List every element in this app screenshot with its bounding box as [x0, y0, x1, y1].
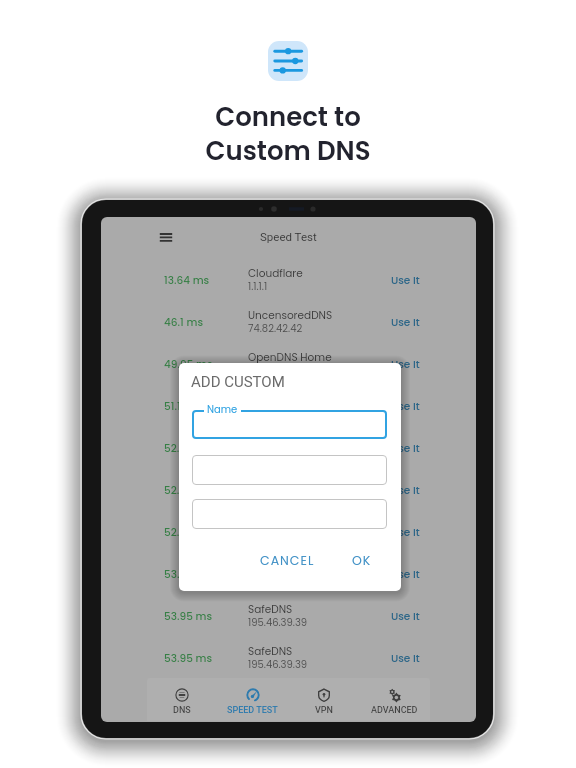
button[interactable]: CANCEL [259, 548, 315, 572]
button[interactable]: 51.16 ms [101, 385, 476, 427]
staticText: 9.9.9.9 [248, 447, 280, 461]
button[interactable]: 52.3 ms [101, 469, 476, 511]
button[interactable]: SPEED TEST [217, 678, 288, 721]
staticText: Use It [391, 315, 420, 330]
staticText: CANCEL [260, 552, 315, 569]
staticText: AdGuard [248, 476, 296, 491]
button[interactable]: 53.95 ms [101, 637, 476, 679]
staticText: 52.6 ms [164, 525, 206, 540]
staticText: Speed Test [260, 230, 317, 243]
button[interactable]: ADVANCED [359, 678, 430, 721]
button[interactable]: Menu [156, 228, 176, 248]
staticText: 53.2 ms [164, 567, 205, 582]
staticText: Name [207, 402, 238, 416]
staticText: 13.64 ms [164, 273, 210, 288]
staticText: ADVANCED [371, 705, 418, 716]
staticText: 8.8.8.8 [248, 405, 280, 419]
staticText: Use It [391, 525, 420, 540]
staticText: ADD CUSTOM [191, 373, 285, 391]
staticText: OK [352, 552, 372, 569]
button[interactable]: 53.95 ms [101, 595, 476, 637]
staticText: 1.1.1.1 [248, 279, 268, 293]
button[interactable]: OK [344, 548, 380, 572]
staticText: 46.1 ms [164, 315, 203, 330]
staticText: SPEED TEST [227, 705, 278, 716]
staticText: 94.140.14.14 [248, 489, 302, 503]
staticText: Use It [391, 651, 420, 666]
staticText: Use It [391, 567, 420, 582]
staticText: 195.46.39.39 [248, 657, 308, 671]
staticText: 195.46.39.39 [248, 615, 308, 629]
staticText: Use It [391, 609, 420, 624]
button[interactable]: 52.1 ms [101, 427, 476, 469]
staticText: SafeDNS [248, 644, 293, 659]
staticText: VPN [315, 705, 333, 716]
staticText: 53.95 ms [164, 609, 213, 624]
staticText: SafeDNS [248, 602, 293, 617]
staticText: 52.1 ms [164, 441, 203, 456]
staticText: UncensoredDNS [248, 308, 333, 323]
staticText: Use It [391, 357, 420, 372]
staticText: Use It [391, 273, 420, 288]
staticText: Use It [391, 399, 420, 414]
staticText: 53.95 ms [164, 651, 213, 666]
staticText: 208.67.222.222 [248, 363, 319, 377]
staticText: Use It [391, 441, 420, 456]
staticText: OpenDNS Home [248, 350, 332, 365]
staticText: 74.82.42.42 [248, 321, 303, 335]
button[interactable]: 13.64 ms [101, 259, 476, 301]
button[interactable]: VPN [288, 678, 359, 721]
button[interactable]: DNS [147, 678, 217, 721]
staticText: Cloudflare [248, 266, 303, 281]
staticText: Quad9 [248, 434, 284, 449]
button[interactable]: 52.6 ms [101, 511, 476, 553]
staticText: 51.16 ms [164, 399, 207, 414]
button[interactable]: 46.1 ms [101, 301, 476, 343]
staticText: Use It [391, 483, 420, 498]
button[interactable]: 53.2 ms [101, 553, 476, 595]
button[interactable]: 49.95 ms [101, 343, 476, 385]
staticText: Connect to Custom DNS [205, 99, 371, 169]
staticText: Comodo [248, 560, 295, 575]
staticText: 49.95 ms [164, 357, 213, 372]
staticText: 52.3 ms [164, 483, 205, 498]
staticText: CleanBrowsing [248, 518, 327, 533]
staticText: DNS [173, 705, 191, 716]
